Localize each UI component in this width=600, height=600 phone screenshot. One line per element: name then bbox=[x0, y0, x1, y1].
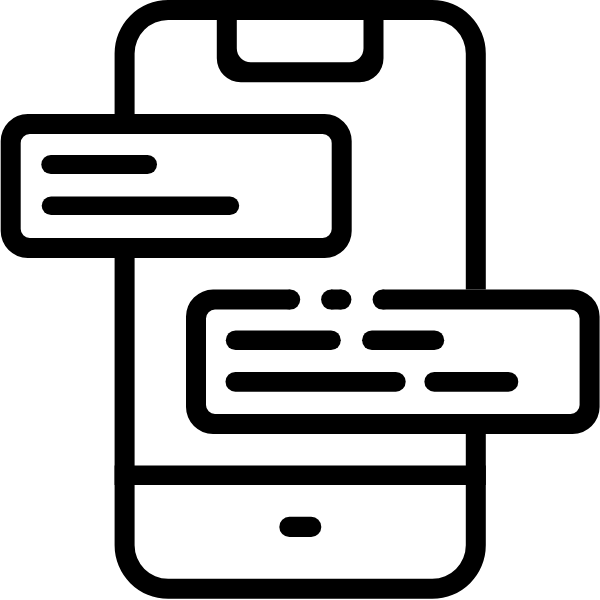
button[interactable]: Mobile chat messages bbox=[0, 0, 600, 600]
